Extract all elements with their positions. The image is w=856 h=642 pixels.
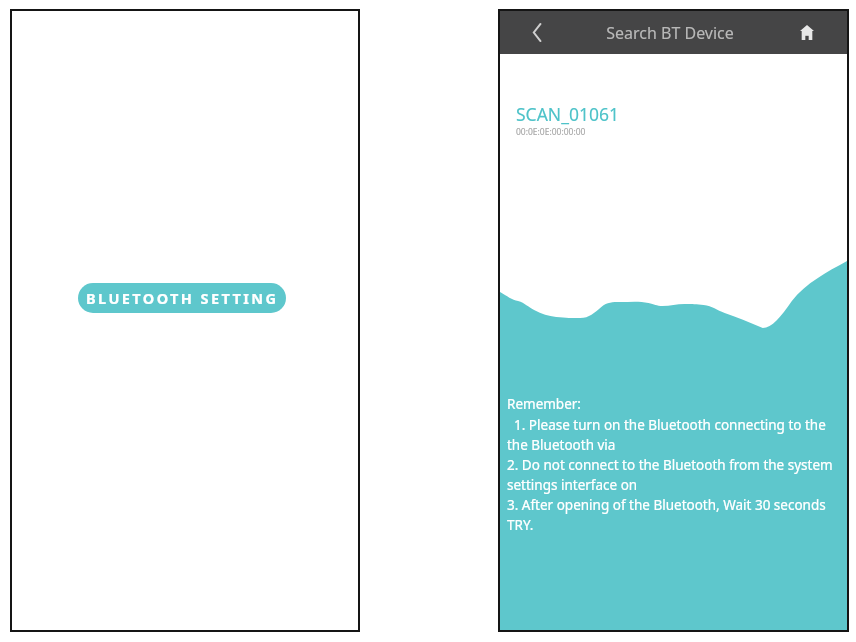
staticText: Search BT Device — [574, 22, 766, 44]
staticText: 00:0E:0E:00:00:00 — [516, 126, 586, 138]
button[interactable]: BLUETOOTH SETTING — [78, 283, 286, 313]
button[interactable]: Home — [766, 11, 847, 54]
button[interactable]: SCAN_01061 — [500, 95, 847, 148]
staticText: BLUETOOTH SETTING — [86, 288, 279, 308]
button[interactable]: Back — [500, 11, 574, 54]
staticText: SCAN_01061 — [516, 102, 619, 126]
staticText: Remember: 1. Please turn on the Bluetoot… — [507, 395, 833, 534]
